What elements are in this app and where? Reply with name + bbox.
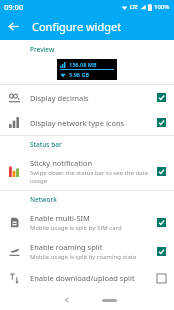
staticText: Enable multi-SIM [30,213,90,223]
button[interactable]: Enable roaming split [0,237,174,266]
staticText: Mobile usage is split by SIM card [30,224,122,232]
button[interactable]: Back [59,292,75,308]
staticText: 136.08 MB [69,61,97,68]
staticText: Configure widget [32,19,122,34]
staticText: Sticky notification [30,158,93,168]
staticText: Swipe down the status bar to see the dat… [30,169,150,185]
staticText: 100% [154,3,170,11]
staticText: LTE [130,4,138,10]
button[interactable]: Home [102,299,117,302]
button[interactable]: Checked [155,91,168,104]
staticText: Status bar [30,140,62,149]
staticText: 09:00 [4,2,24,12]
button[interactable]: Checked [155,116,168,129]
button[interactable]: Checked [155,245,168,258]
staticText: Enable roaming split [30,242,103,252]
staticText: Mobile usage is split by roaming state [30,253,137,261]
button[interactable]: Enable download/upload split [0,266,174,290]
button[interactable]: Checked [155,165,168,178]
staticText: Enable download/upload split [30,273,135,283]
button[interactable]: Display decimals [0,85,174,110]
staticText: Preview [30,45,55,54]
button[interactable]: Display network type icons [0,110,174,135]
button[interactable]: Sticky notification [0,153,174,190]
staticText: 5.96 GB [69,71,90,78]
button[interactable]: Enable multi-SIM [0,208,174,237]
staticText: Network [30,195,57,204]
button[interactable]: Checked [155,216,168,229]
staticText: Display network type icons [30,118,125,128]
staticText: Display decimals [30,93,89,103]
button[interactable]: Back [0,13,27,40]
button[interactable]: Unchecked [155,272,168,285]
